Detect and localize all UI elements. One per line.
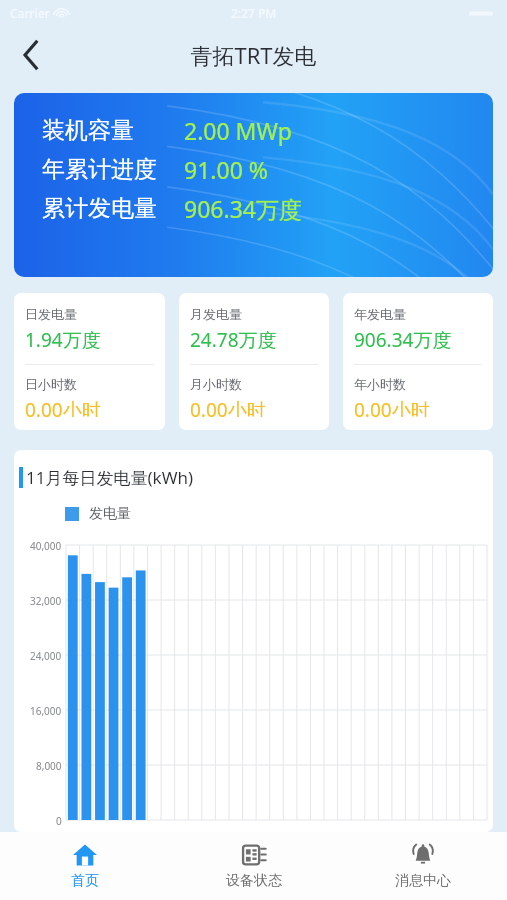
- staticText: 8,000: [36, 759, 62, 771]
- staticText: 2.00 MWp: [184, 115, 292, 146]
- staticText: 906.34万度: [184, 193, 302, 224]
- staticText: 消息中心: [395, 872, 451, 890]
- staticText: 装机容量: [42, 116, 134, 145]
- staticText: 年小时数: [354, 376, 406, 392]
- staticText: 首页: [71, 872, 99, 890]
- staticText: 24,000: [30, 649, 62, 661]
- staticText: 日小时数: [25, 376, 77, 392]
- staticText: 16,000: [30, 704, 62, 716]
- staticText: 青拓TRT发电: [190, 40, 317, 70]
- staticText: 40,000: [30, 539, 62, 551]
- staticText: 1.94万度: [25, 327, 101, 353]
- staticText: 0: [56, 814, 62, 826]
- button[interactable]: 装机容量: [14, 93, 493, 277]
- button[interactable]: 月发电量: [179, 293, 329, 430]
- button[interactable]: Back: [8, 32, 54, 78]
- staticText: 年累计进度: [42, 155, 157, 184]
- staticText: 32,000: [30, 594, 62, 606]
- button[interactable]: 日发电量: [14, 293, 165, 430]
- staticText: 累计发电量: [42, 194, 157, 223]
- staticText: 2:27 PM: [231, 5, 277, 21]
- staticText: 91.00 %: [184, 154, 268, 185]
- staticText: 24.78万度: [190, 327, 277, 353]
- button[interactable]: 首页: [0, 832, 169, 900]
- staticText: 906.34万度: [354, 327, 452, 353]
- staticText: 月发电量: [190, 306, 242, 322]
- staticText: 月小时数: [190, 376, 242, 392]
- staticText: 0.00小时: [190, 397, 266, 417]
- button[interactable]: 年发电量: [343, 293, 493, 430]
- staticText: 年发电量: [354, 306, 406, 322]
- button[interactable]: 消息中心: [338, 832, 507, 900]
- button[interactable]: 设备状态: [169, 832, 338, 900]
- staticText: 日发电量: [25, 306, 77, 322]
- staticText: 11月每日发电量(kWh): [26, 466, 194, 489]
- staticText: Carrier: [10, 5, 50, 21]
- staticText: 设备状态: [226, 872, 282, 890]
- staticText: 发电量: [89, 505, 131, 523]
- staticText: 0.00小时: [354, 397, 430, 417]
- staticText: 0.00小时: [25, 397, 101, 417]
